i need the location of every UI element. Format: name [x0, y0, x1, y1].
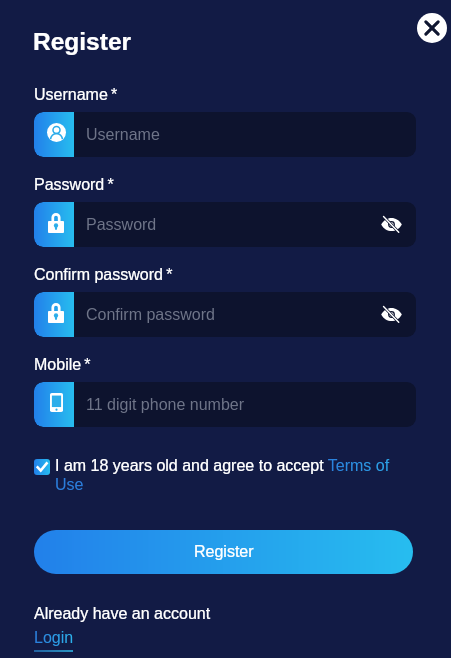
button[interactable]: Toggle password visibility: [366, 202, 416, 247]
button[interactable]: Confirm password: [34, 292, 416, 337]
staticText: Register: [33, 28, 132, 55]
staticText: Register: [194, 543, 254, 561]
button[interactable]: 11 digit phone number: [34, 382, 416, 427]
button[interactable]: I am 18 years old and agree to accept Te…: [34, 457, 416, 494]
staticText: Username: [86, 126, 160, 144]
staticText: Mobile *: [34, 356, 91, 374]
button[interactable]: Register: [34, 530, 413, 574]
staticText: Password *: [34, 176, 114, 194]
staticText: Confirm password: [86, 306, 215, 324]
staticText: Confirm password *: [34, 266, 173, 284]
button[interactable]: Login: [34, 629, 74, 647]
button[interactable]: Password: [34, 202, 416, 247]
staticText: I am 18 years old and agree to accept Te…: [55, 457, 416, 494]
staticText: Username *: [34, 86, 118, 104]
staticText: Already have an account: [34, 605, 211, 623]
button[interactable]: Username: [34, 112, 416, 157]
button[interactable]: Close: [417, 13, 447, 43]
staticText: Password: [86, 216, 157, 234]
staticText: 11 digit phone number: [86, 396, 245, 414]
staticText: Login: [34, 629, 74, 647]
button[interactable]: Toggle password visibility: [366, 292, 416, 337]
